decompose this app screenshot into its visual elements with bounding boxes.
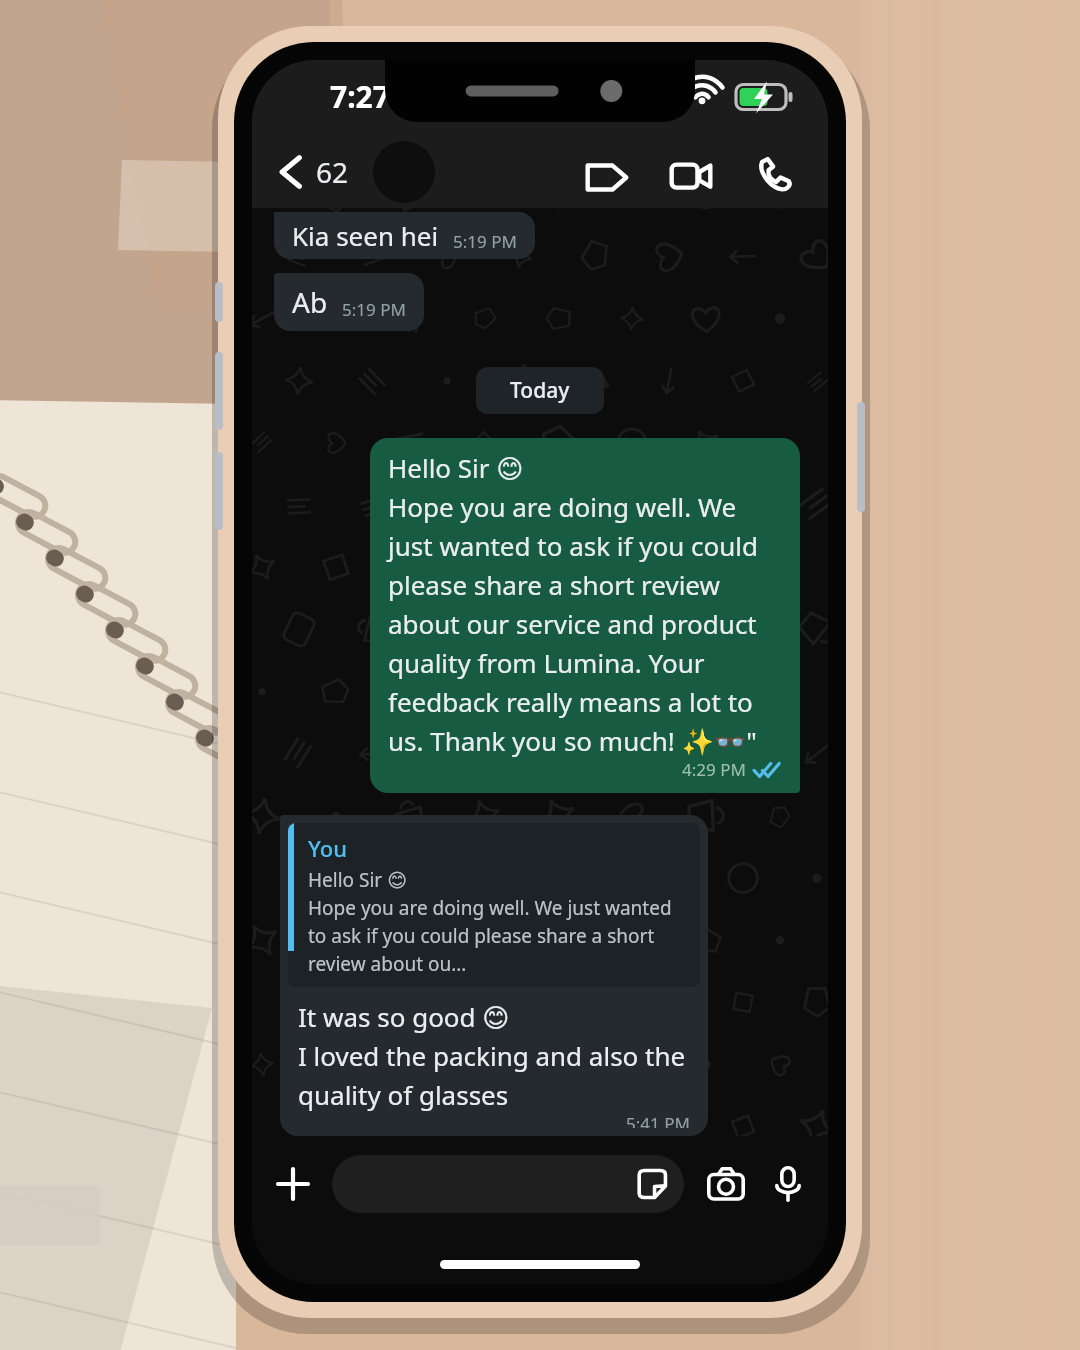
button[interactable]: Camera bbox=[698, 1156, 754, 1212]
button[interactable]: Voice call bbox=[748, 145, 802, 199]
button[interactable]: Attach bbox=[264, 1155, 322, 1213]
button[interactable]: Ab bbox=[274, 273, 424, 331]
staticText: 5:19 PM bbox=[453, 230, 517, 253]
staticText: 5:41 PM bbox=[626, 1112, 690, 1128]
staticText: Today bbox=[510, 376, 570, 405]
staticText: 5:19 PM bbox=[342, 298, 406, 321]
other: Sticker bbox=[628, 1160, 676, 1208]
button[interactable]: You bbox=[280, 815, 708, 1136]
button[interactable]: Kia seen hei bbox=[274, 212, 535, 259]
staticText: Hello Sir 😊 Hope you are doing well. We … bbox=[308, 867, 686, 977]
button[interactable]: Back bbox=[268, 147, 359, 197]
staticText: You bbox=[308, 833, 347, 863]
button[interactable]: Sticker bbox=[332, 1155, 684, 1213]
staticText: Ab bbox=[292, 283, 328, 321]
button[interactable]: Label bbox=[580, 145, 634, 199]
button[interactable]: Hello Sir 😊 Hope you are doing well. We … bbox=[370, 438, 800, 793]
staticText: Kia seen hei bbox=[292, 218, 439, 253]
other: Back bbox=[278, 155, 304, 189]
staticText: Hello Sir 😊 Hope you are doing well. We … bbox=[388, 450, 782, 758]
staticText: 7:27 bbox=[330, 76, 390, 117]
button[interactable]: Video call bbox=[664, 145, 718, 199]
button[interactable]: Voice message bbox=[760, 1156, 816, 1212]
button[interactable]: Profile photo bbox=[373, 141, 435, 203]
staticText: 62 bbox=[316, 153, 349, 191]
button[interactable]: Today bbox=[476, 367, 604, 414]
staticText: 4:29 PM bbox=[682, 758, 746, 781]
staticText: It was so good 😊 I loved the packing and… bbox=[298, 999, 690, 1112]
